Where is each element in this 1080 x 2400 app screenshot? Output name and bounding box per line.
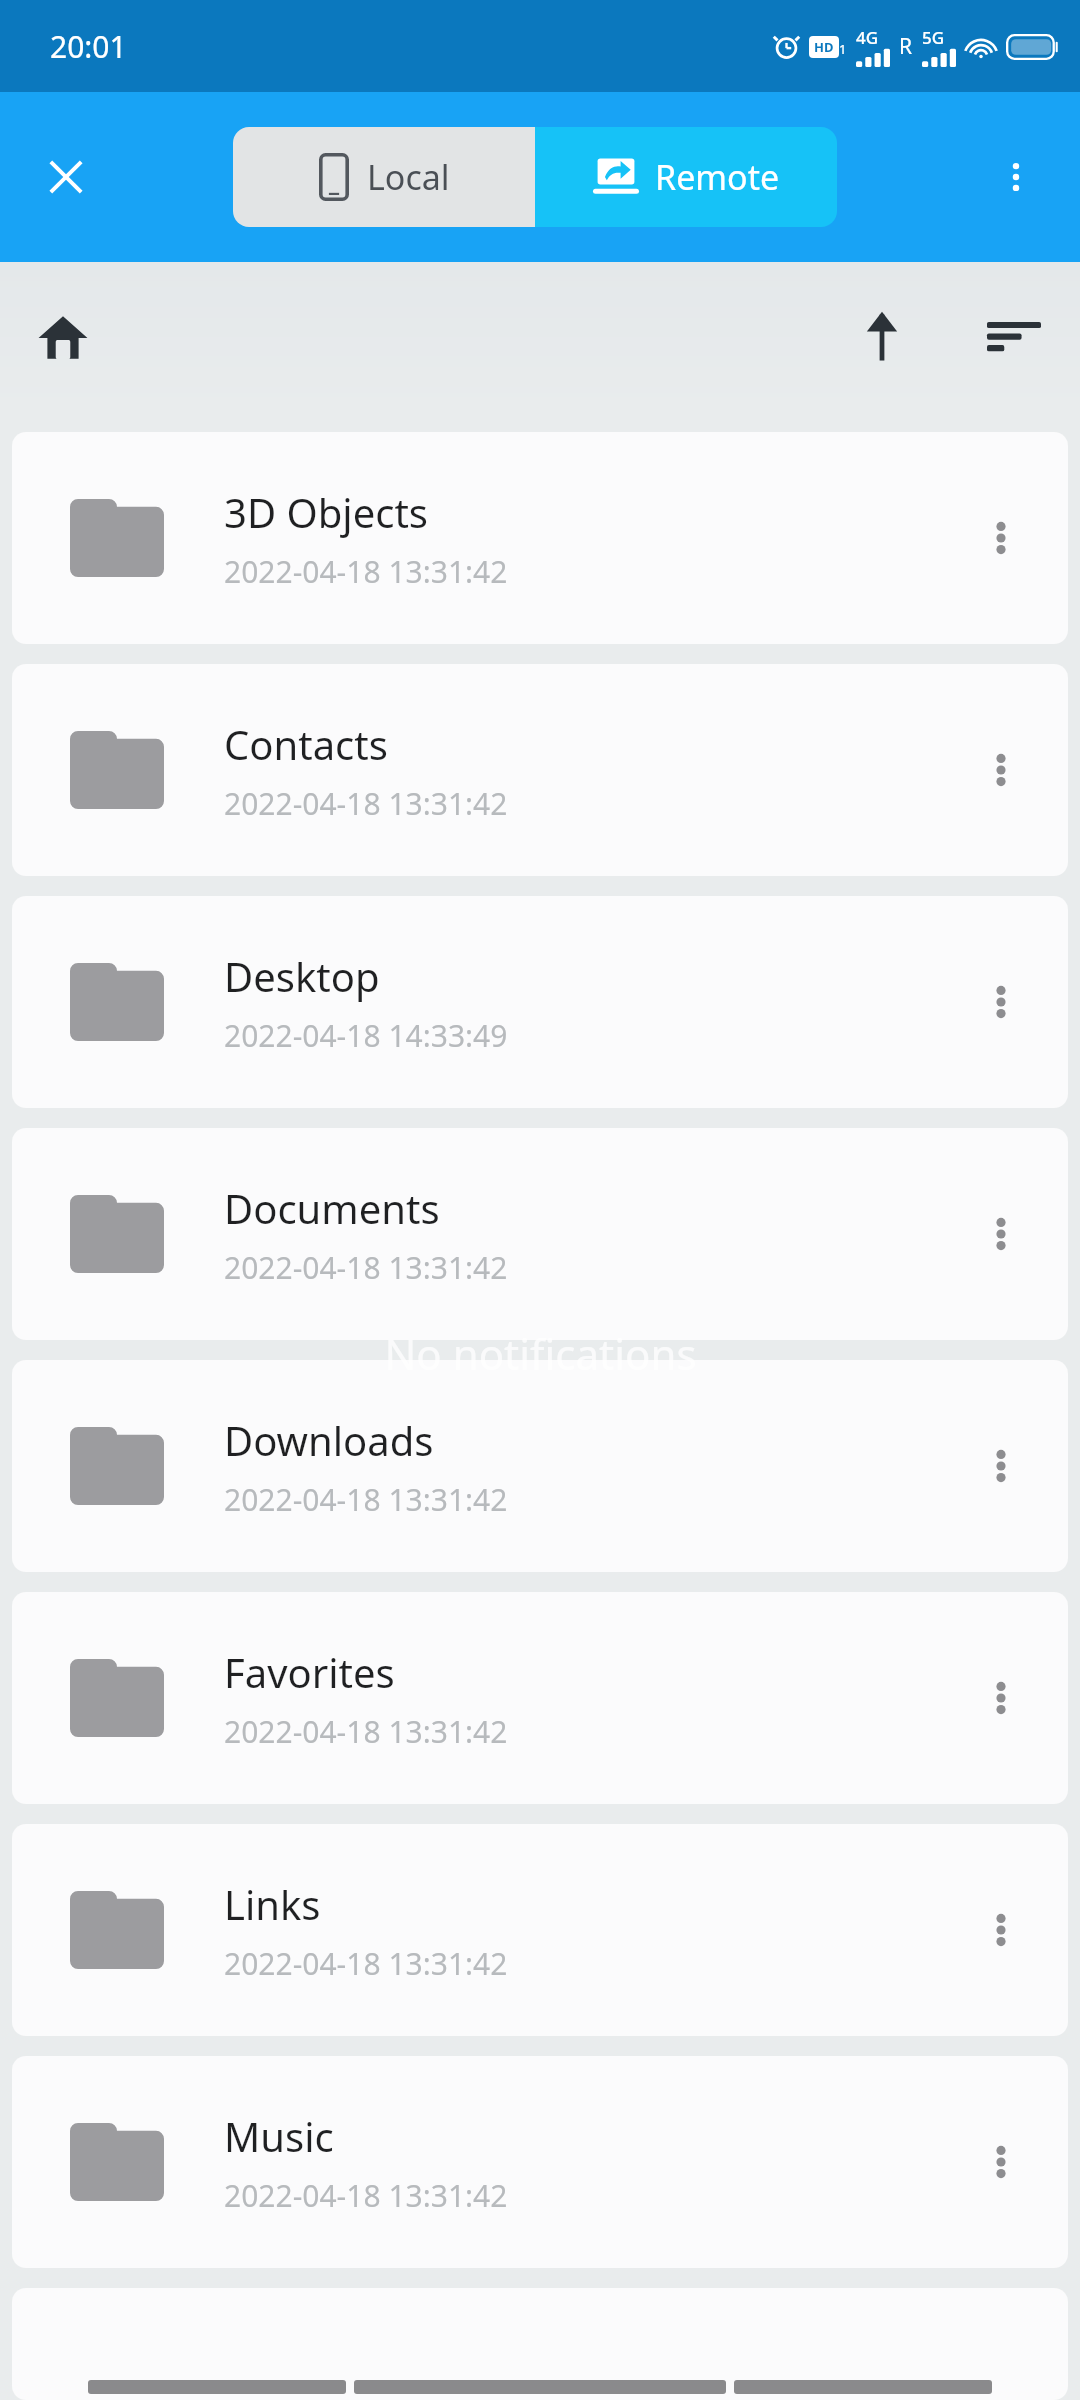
staticText: 2022-04-18 13:31:42 bbox=[224, 1247, 508, 1288]
button[interactable]: More options bbox=[980, 141, 1052, 213]
button[interactable]: Downloads bbox=[12, 1360, 1068, 1572]
staticText: 2022-04-18 13:31:42 bbox=[224, 551, 508, 592]
staticText: Remote bbox=[655, 154, 780, 200]
staticText: 2022-04-18 13:31:42 bbox=[224, 2175, 508, 2216]
staticText: Documents bbox=[224, 1181, 440, 1235]
staticText: 3D Objects bbox=[224, 485, 428, 539]
button[interactable]: Item menu bbox=[946, 947, 1056, 1057]
button[interactable]: Sort bbox=[966, 289, 1062, 385]
staticText: Links bbox=[224, 1877, 321, 1931]
button[interactable]: Remote bbox=[535, 127, 837, 227]
button[interactable]: Item menu bbox=[946, 2107, 1056, 2217]
staticText: Favorites bbox=[224, 1645, 395, 1699]
staticText: 20:01 bbox=[50, 26, 127, 67]
button[interactable]: Item menu bbox=[946, 483, 1056, 593]
button[interactable]: Navigation 0 bbox=[88, 2380, 346, 2394]
staticText: R bbox=[899, 32, 913, 61]
staticText: Local bbox=[367, 154, 450, 200]
button[interactable]: Item menu bbox=[946, 1411, 1056, 1521]
button[interactable]: Music bbox=[12, 2056, 1068, 2268]
staticText: 2022-04-18 13:31:42 bbox=[224, 1711, 508, 1752]
staticText: HD bbox=[814, 38, 834, 56]
button[interactable]: Favorites bbox=[12, 1592, 1068, 1804]
button[interactable]: Desktop bbox=[12, 896, 1068, 1108]
staticText: 5G bbox=[922, 26, 945, 49]
button[interactable]: Home bbox=[20, 294, 106, 380]
button[interactable]: Documents bbox=[12, 1128, 1068, 1340]
staticText: 1 bbox=[839, 40, 847, 58]
button[interactable]: Local bbox=[233, 127, 535, 227]
button[interactable]: Up one level bbox=[834, 289, 930, 385]
staticText: Desktop bbox=[224, 949, 380, 1003]
button[interactable]: Close bbox=[26, 137, 106, 217]
button[interactable]: Item menu bbox=[946, 1875, 1056, 1985]
button[interactable]: 3D Objects bbox=[12, 432, 1068, 644]
button[interactable]: Item menu bbox=[946, 1179, 1056, 1289]
staticText: 2022-04-18 13:31:42 bbox=[224, 1943, 508, 1984]
staticText: 2022-04-18 14:33:49 bbox=[224, 1015, 508, 1056]
staticText: No notifications bbox=[384, 1325, 697, 1382]
staticText: Music bbox=[224, 2109, 334, 2163]
button[interactable]: Links bbox=[12, 1824, 1068, 2036]
staticText: 4G bbox=[856, 26, 879, 49]
button[interactable]: Navigation 2 bbox=[734, 2380, 992, 2394]
button[interactable]: Navigation 1 bbox=[354, 2380, 726, 2394]
staticText: 2022-04-18 13:31:42 bbox=[224, 1479, 508, 1520]
staticText: 2022-04-18 13:31:42 bbox=[224, 783, 508, 824]
button[interactable]: Item menu bbox=[946, 1643, 1056, 1753]
staticText: Contacts bbox=[224, 717, 388, 771]
staticText: Downloads bbox=[224, 1413, 434, 1467]
button[interactable]: Item menu bbox=[946, 715, 1056, 825]
button[interactable] bbox=[12, 2288, 1068, 2400]
button[interactable]: Contacts bbox=[12, 664, 1068, 876]
